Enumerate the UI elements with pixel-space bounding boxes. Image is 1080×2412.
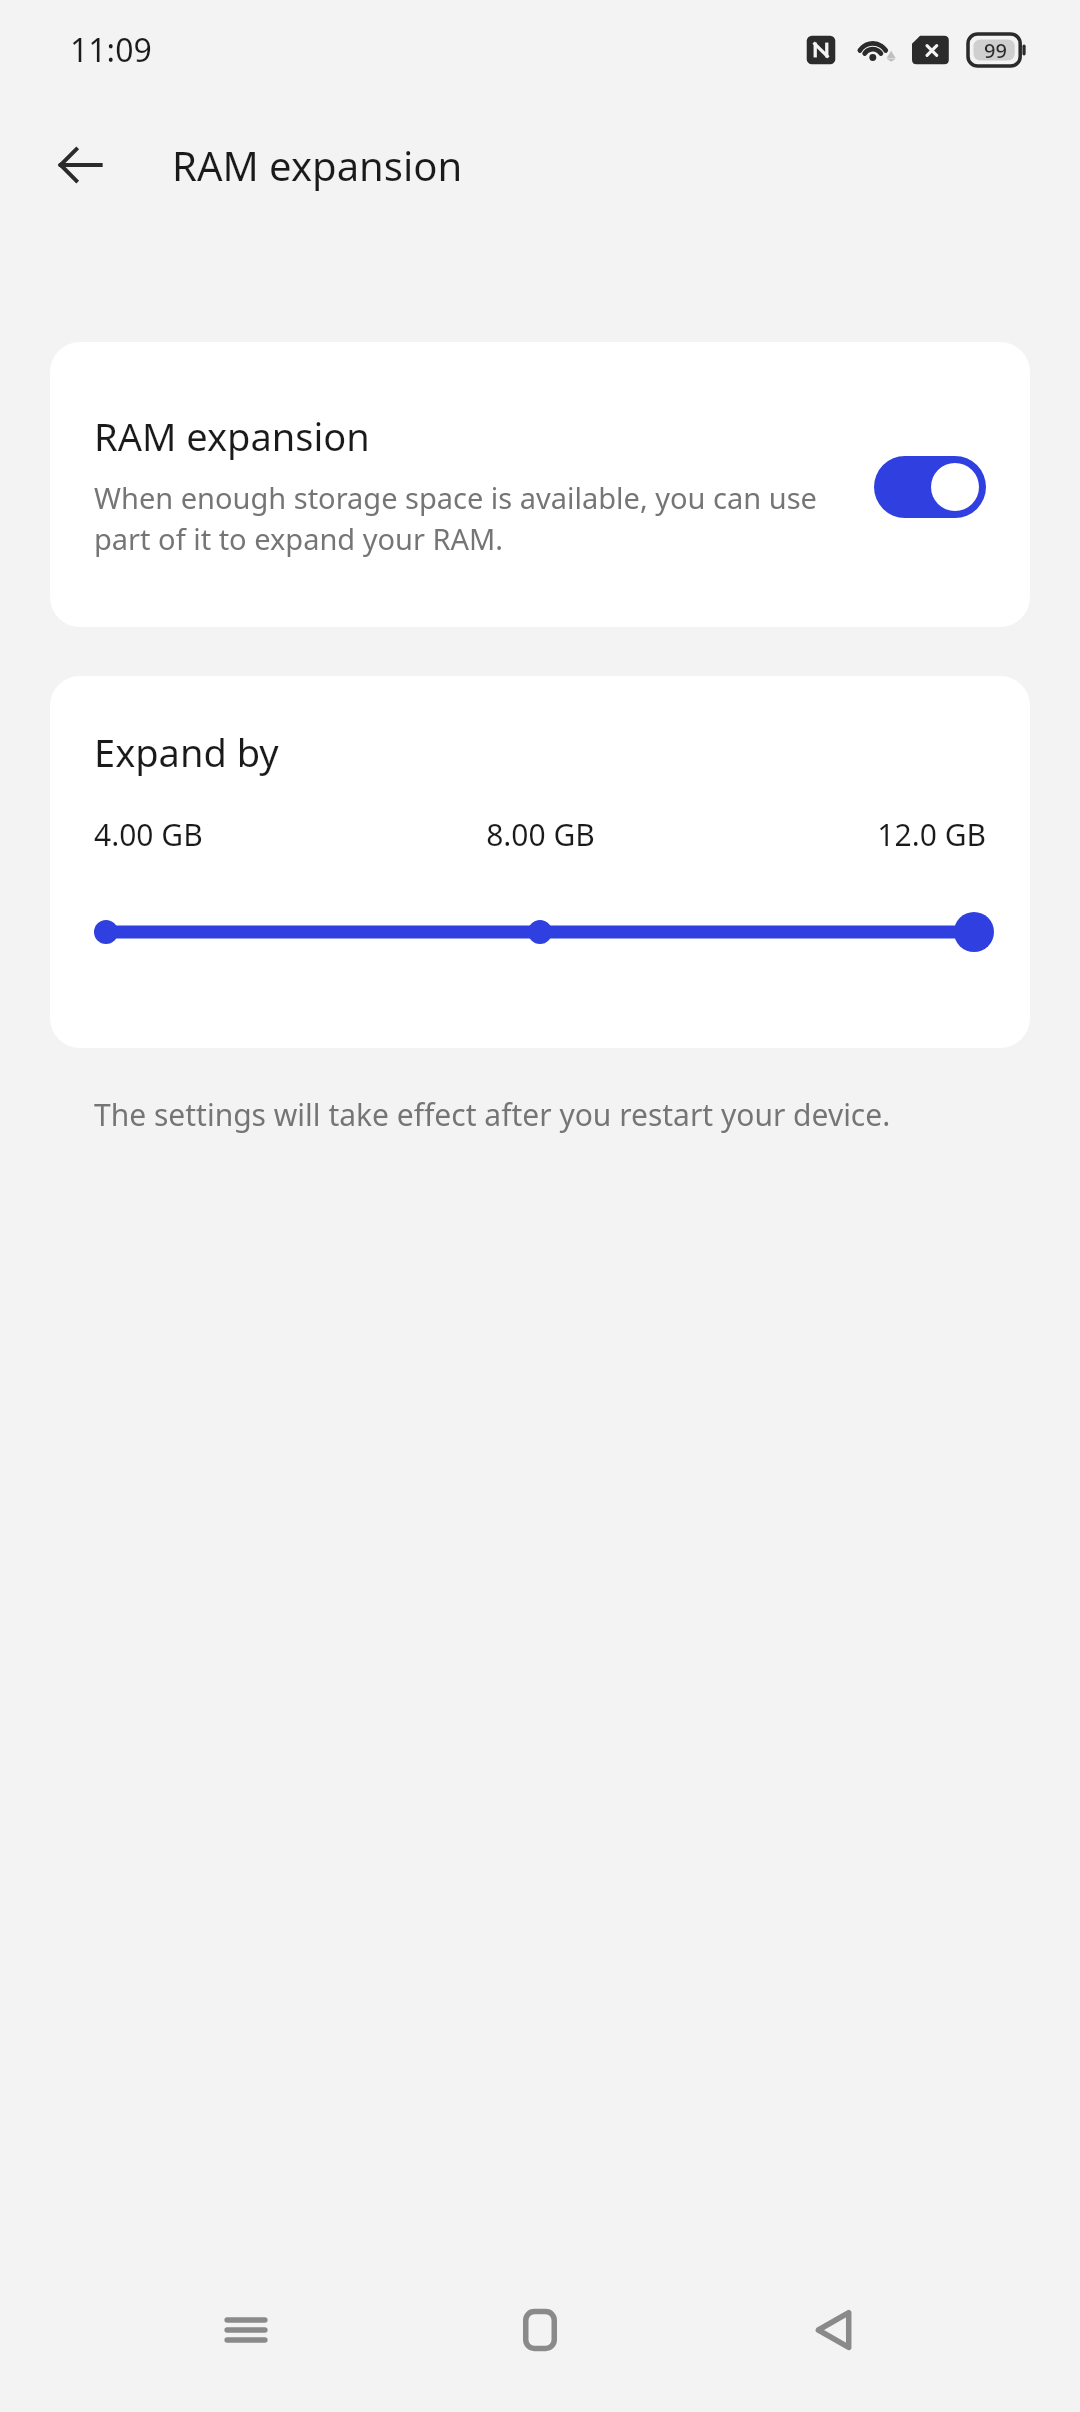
button[interactable]: RAM expansion [50, 342, 1030, 627]
staticText: RAM expansion [94, 410, 370, 462]
button[interactable]: Recent apps [198, 2282, 294, 2378]
staticText: 4.00 GB [94, 814, 392, 855]
staticText: RAM expansion [172, 138, 463, 192]
staticText: 99 [984, 37, 1007, 64]
staticText: 11:09 [70, 28, 152, 72]
staticText: When enough storage space is available, … [94, 478, 870, 559]
button[interactable]: Expand by slider [94, 897, 986, 967]
staticText: Expand by [94, 726, 279, 778]
button[interactable]: Back [40, 125, 120, 205]
button[interactable]: RAM expansion toggle [874, 456, 986, 518]
staticText: 8.00 GB [392, 814, 689, 855]
staticText: 12.0 GB [689, 814, 986, 855]
staticText: The settings will take effect after you … [94, 1094, 891, 1135]
button[interactable]: Home [492, 2282, 588, 2378]
button[interactable]: Back [786, 2282, 882, 2378]
